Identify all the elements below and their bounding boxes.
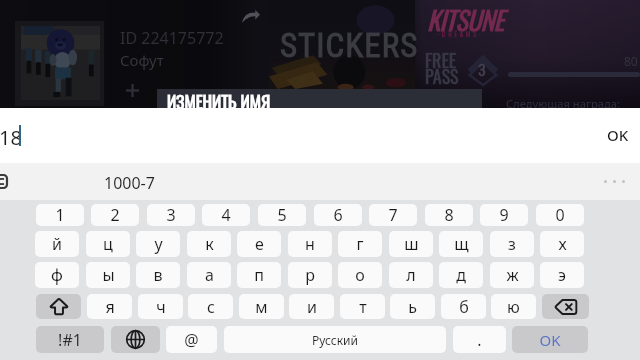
button[interactable]: Share (240, 6, 262, 26)
button[interactable]: д (439, 262, 483, 288)
staticText: а (205, 264, 214, 286)
button[interactable]: ф (35, 262, 79, 288)
button[interactable]: Add (120, 78, 144, 102)
staticText: STICKERS (280, 26, 419, 65)
button[interactable]: м (239, 294, 284, 319)
button[interactable]: Clipboard (0, 172, 8, 191)
button[interactable]: в (136, 262, 180, 288)
button[interactable]: л (389, 262, 433, 288)
staticText: я (105, 296, 115, 318)
staticText: х (558, 233, 567, 255)
staticText: м (255, 296, 268, 318)
button[interactable]: Backspace (542, 294, 589, 319)
button[interactable]: п (237, 262, 281, 288)
button[interactable]: ц (86, 231, 130, 257)
button[interactable]: г (338, 231, 382, 257)
button[interactable]: ч (138, 294, 183, 319)
staticText: !#1 (58, 329, 82, 351)
button[interactable]: я (87, 294, 132, 319)
staticText: щ (454, 233, 469, 255)
button[interactable]: !#1 (36, 326, 104, 353)
button[interactable]: @ (166, 326, 217, 353)
button[interactable]: к (187, 231, 231, 257)
button[interactable]: т (340, 294, 385, 319)
button[interactable]: OK (512, 326, 588, 353)
staticText: ю (507, 296, 520, 318)
button[interactable]: ж (490, 262, 534, 288)
button[interactable]: ю (491, 294, 536, 319)
staticText: п (254, 264, 264, 286)
staticText: 80 (624, 53, 638, 69)
staticText: 4 (221, 204, 231, 226)
button[interactable]: 1 (36, 204, 84, 226)
staticText: ж (506, 264, 519, 286)
staticText: й (52, 233, 62, 255)
button[interactable]: с (188, 294, 233, 319)
button[interactable]: у (136, 231, 180, 257)
button[interactable]: 6 (314, 204, 362, 226)
staticText: OK (607, 125, 629, 145)
staticText: ь (408, 296, 417, 318)
staticText: @ (184, 329, 199, 351)
button[interactable]: й (35, 231, 79, 257)
staticText: з (508, 233, 516, 255)
button[interactable]: . (453, 326, 506, 353)
staticText: с (207, 296, 215, 318)
button[interactable]: р (288, 262, 332, 288)
button[interactable]: щ (439, 231, 483, 257)
staticText: в (153, 264, 163, 286)
staticText: 18 (0, 124, 22, 151)
button[interactable]: б (441, 294, 486, 319)
button[interactable]: о (338, 262, 382, 288)
staticText: FREE (425, 47, 457, 74)
staticText: Русский (312, 332, 358, 348)
staticText: ы (102, 264, 115, 286)
button[interactable]: ш (389, 231, 433, 257)
button[interactable]: з (490, 231, 534, 257)
button[interactable]: Русский (224, 326, 446, 353)
staticText: э (558, 264, 566, 286)
button[interactable]: х (540, 231, 584, 257)
button[interactable]: ь (390, 294, 435, 319)
staticText: г (356, 233, 364, 255)
staticText: KITSUNE (427, 0, 504, 39)
staticText: ц (103, 233, 113, 255)
staticText: ID 224175772 (120, 27, 224, 49)
button[interactable]: 2 (91, 204, 139, 226)
staticText: 3 (166, 204, 176, 226)
button[interactable]: е (237, 231, 281, 257)
staticText: и (307, 296, 317, 318)
staticText: 8 (444, 204, 454, 226)
staticText: 5 (277, 204, 287, 226)
staticText: 9 (499, 204, 509, 226)
button[interactable]: а (187, 262, 231, 288)
staticText: PASS (425, 63, 459, 90)
button[interactable]: Change language (111, 326, 160, 353)
button[interactable]: 7 (369, 204, 417, 226)
staticText: к (205, 233, 214, 255)
button[interactable]: 4 (202, 204, 250, 226)
button[interactable]: 9 (480, 204, 528, 226)
button[interactable]: STICKERS (269, 0, 415, 89)
staticText: б (459, 296, 469, 318)
staticText: у (154, 233, 163, 255)
button[interactable]: ы (86, 262, 130, 288)
button[interactable]: 5 (258, 204, 306, 226)
button[interactable]: н (288, 231, 332, 257)
button[interactable] (15, 21, 104, 106)
staticText: л (406, 264, 416, 286)
staticText: 1000-7 (104, 172, 155, 194)
button[interactable]: More (601, 180, 628, 183)
button[interactable]: 0 (536, 204, 584, 226)
staticText: е (255, 233, 264, 255)
staticText: ч (156, 296, 166, 318)
staticText: ф (51, 264, 63, 286)
button[interactable]: Shift (36, 294, 81, 319)
button[interactable]: OK (601, 119, 635, 151)
staticText: 7 (388, 204, 398, 226)
button[interactable]: и (289, 294, 334, 319)
staticText: OK (539, 330, 561, 350)
button[interactable]: э (540, 262, 584, 288)
button[interactable]: 3 (147, 204, 195, 226)
button[interactable]: 8 (425, 204, 473, 226)
